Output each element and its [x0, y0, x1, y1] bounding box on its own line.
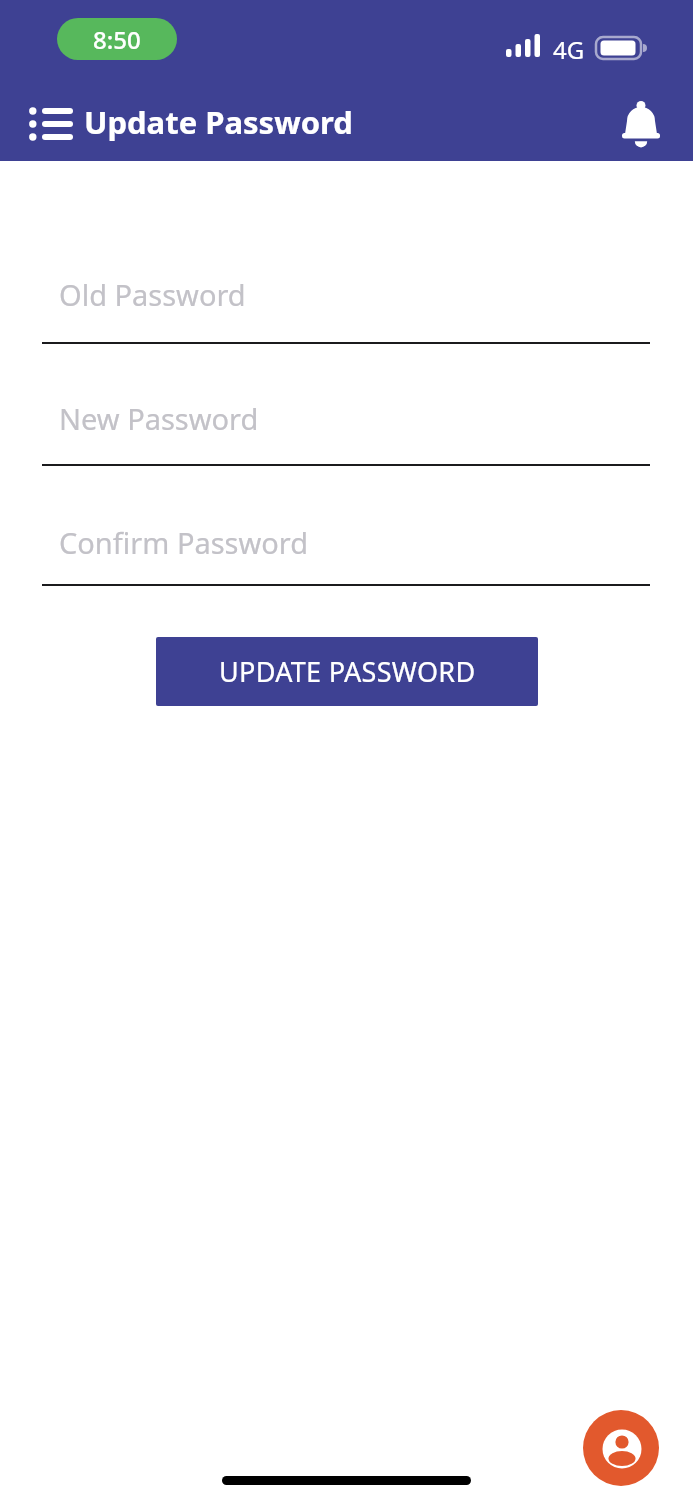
staticText: 8:50	[93, 23, 141, 56]
staticText: New Password	[59, 399, 259, 438]
button[interactable]: 8:50	[57, 18, 177, 60]
button[interactable]	[24, 100, 78, 146]
button[interactable]: Old Password	[42, 262, 650, 354]
button[interactable]: UPDATE PASSWORD	[156, 637, 538, 706]
button[interactable]: Confirm Password	[42, 510, 650, 596]
button[interactable]	[615, 97, 669, 155]
staticText: Old Password	[59, 275, 246, 314]
button[interactable]	[583, 1410, 659, 1486]
staticText: Update Password	[84, 101, 353, 143]
staticText: Confirm Password	[59, 523, 309, 562]
staticText: 4G	[553, 33, 585, 61]
button[interactable]: New Password	[42, 386, 650, 476]
staticText: UPDATE PASSWORD	[219, 653, 476, 690]
